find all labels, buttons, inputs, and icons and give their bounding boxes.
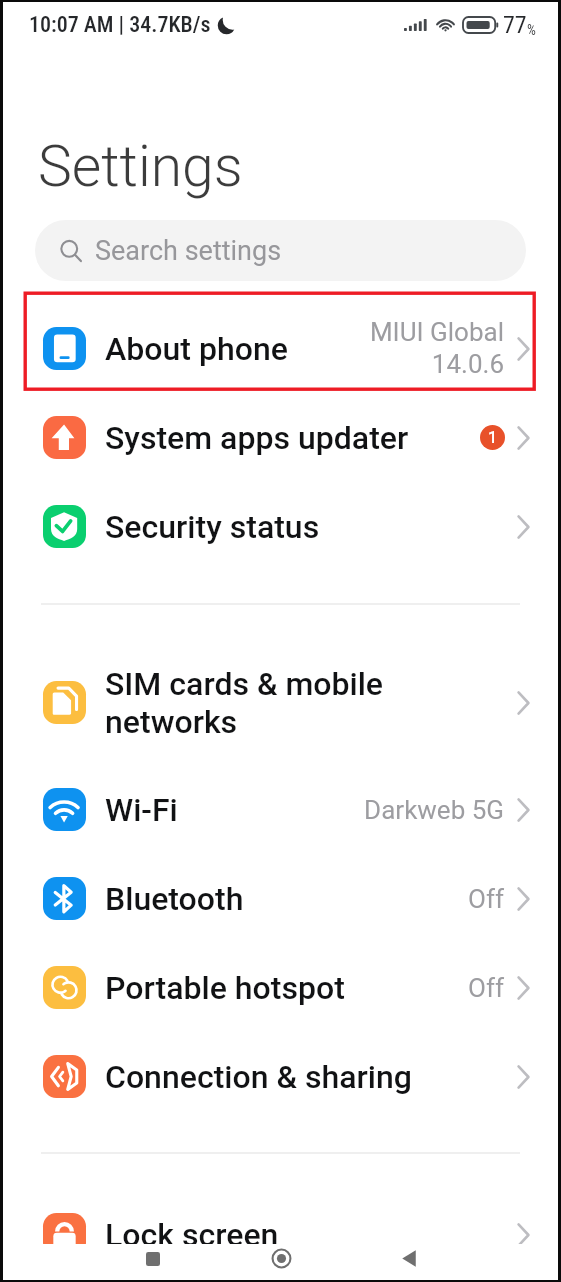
staticText: About phone: [105, 330, 369, 368]
staticText: 1: [488, 428, 498, 447]
staticText: Security status: [105, 508, 517, 546]
button[interactable]: Back: [379, 1244, 439, 1273]
button[interactable]: SIM cards & mobile networks: [3, 649, 558, 756]
button[interactable]: Connection & sharing: [3, 1032, 558, 1121]
staticText: Portable hotspot: [105, 969, 468, 1007]
staticText: Wi-Fi: [105, 791, 364, 829]
staticText: Settings: [38, 133, 243, 200]
button[interactable]: About phone: [3, 304, 558, 393]
staticText: Bluetooth: [105, 880, 468, 918]
button[interactable]: Wi-Fi: [3, 765, 558, 854]
button[interactable]: Security status: [3, 482, 558, 571]
button[interactable]: Search settings: [35, 220, 526, 281]
button[interactable]: Home: [251, 1244, 311, 1273]
staticText: %: [527, 22, 536, 38]
staticText: 10:07 AM | 34.7KB/s: [29, 12, 211, 38]
staticText: Off: [468, 973, 504, 1003]
staticText: MIUI Global 14.0.6: [369, 317, 504, 380]
button[interactable]: Bluetooth: [3, 854, 558, 943]
staticText: System apps updater: [105, 419, 480, 457]
button[interactable]: Portable hotspot: [3, 943, 558, 1032]
button[interactable]: Lock screen: [3, 1190, 558, 1279]
staticText: 77: [503, 11, 527, 39]
staticText: Lock screen: [105, 1216, 517, 1254]
staticText: Search settings: [95, 235, 282, 267]
button[interactable]: Recents: [123, 1244, 183, 1273]
staticText: Darkweb 5G: [364, 795, 504, 825]
staticText: Connection & sharing: [105, 1058, 517, 1096]
staticText: SIM cards & mobile networks: [105, 665, 517, 741]
button[interactable]: System apps updater: [3, 393, 558, 482]
staticText: Off: [468, 884, 504, 914]
